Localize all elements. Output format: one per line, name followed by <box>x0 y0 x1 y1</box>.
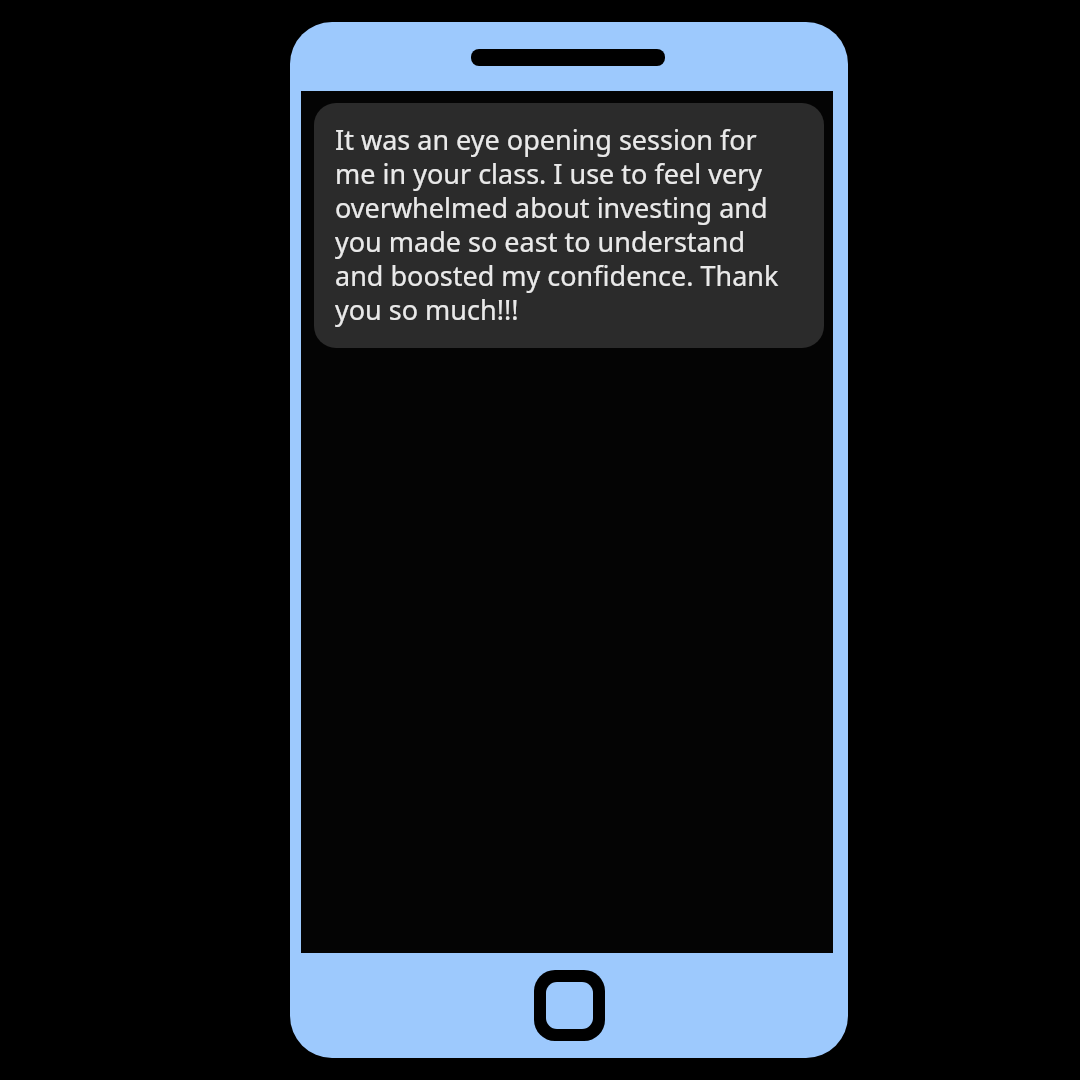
button[interactable]: Home <box>534 970 605 1041</box>
staticText: It was an eye opening session for me in … <box>335 121 800 328</box>
button[interactable]: It was an eye opening session for me in … <box>314 103 824 348</box>
